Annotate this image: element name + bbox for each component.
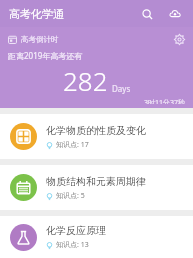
button[interactable]: 化学反应原理	[0, 216, 193, 258]
staticText: Days	[112, 83, 131, 94]
button[interactable]: Search	[137, 4, 157, 24]
staticText: 化学物质的性质及变化	[46, 124, 146, 137]
staticText: 高考化学通	[9, 7, 64, 21]
button[interactable]: 化学物质的性质及变化	[0, 114, 193, 159]
button[interactable]: Cloud	[165, 4, 185, 24]
button[interactable]: 高考倒计时	[0, 27, 193, 108]
staticText: 3时11分37秒	[0, 98, 185, 104]
staticText: 物质结构和元素周期律	[46, 175, 146, 188]
staticText: 化学反应原理	[46, 224, 106, 237]
staticText: 知识点: 13	[56, 240, 89, 250]
staticText: 高考倒计时	[21, 35, 59, 44]
staticText: 距离2019年高考还有	[8, 50, 83, 61]
staticText: 知识点: 5	[56, 191, 85, 201]
staticText: 282	[63, 63, 108, 98]
button[interactable]: Settings	[172, 32, 186, 46]
staticText: 知识点: 17	[56, 140, 89, 150]
button[interactable]: 物质结构和元素周期律	[0, 165, 193, 210]
